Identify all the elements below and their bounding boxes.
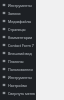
staticText: Инструменты [8,3,32,8]
staticText: Инструменты [8,75,32,80]
staticText: Внешний вид [8,51,32,56]
staticText: Страницы [8,27,26,32]
staticText: Записи [8,11,21,16]
button[interactable]: Инструменты [0,1,36,9]
staticText: Плагины [8,59,24,64]
button[interactable]: Свернуть меню [0,89,36,97]
staticText: Комментарии [8,35,33,40]
button[interactable]: Медиафайлы [0,17,36,25]
staticText: Настройки [8,83,27,88]
button[interactable]: Инструменты [0,73,36,81]
button[interactable]: Настройки [0,81,36,89]
staticText: Пользователи [8,67,33,72]
staticText: Медиафайлы [8,19,32,24]
button[interactable]: Комментарии [0,33,36,41]
staticText: Contact Form 7 [8,43,34,48]
button[interactable]: Пользователи [0,65,36,73]
button[interactable]: Записи [0,9,36,17]
button[interactable]: Внешний вид [0,49,36,57]
button[interactable]: Страницы [0,25,36,33]
staticText: Свернуть меню [8,91,35,96]
button[interactable]: Плагины [0,57,36,65]
button[interactable]: Contact Form 7 [0,41,36,49]
